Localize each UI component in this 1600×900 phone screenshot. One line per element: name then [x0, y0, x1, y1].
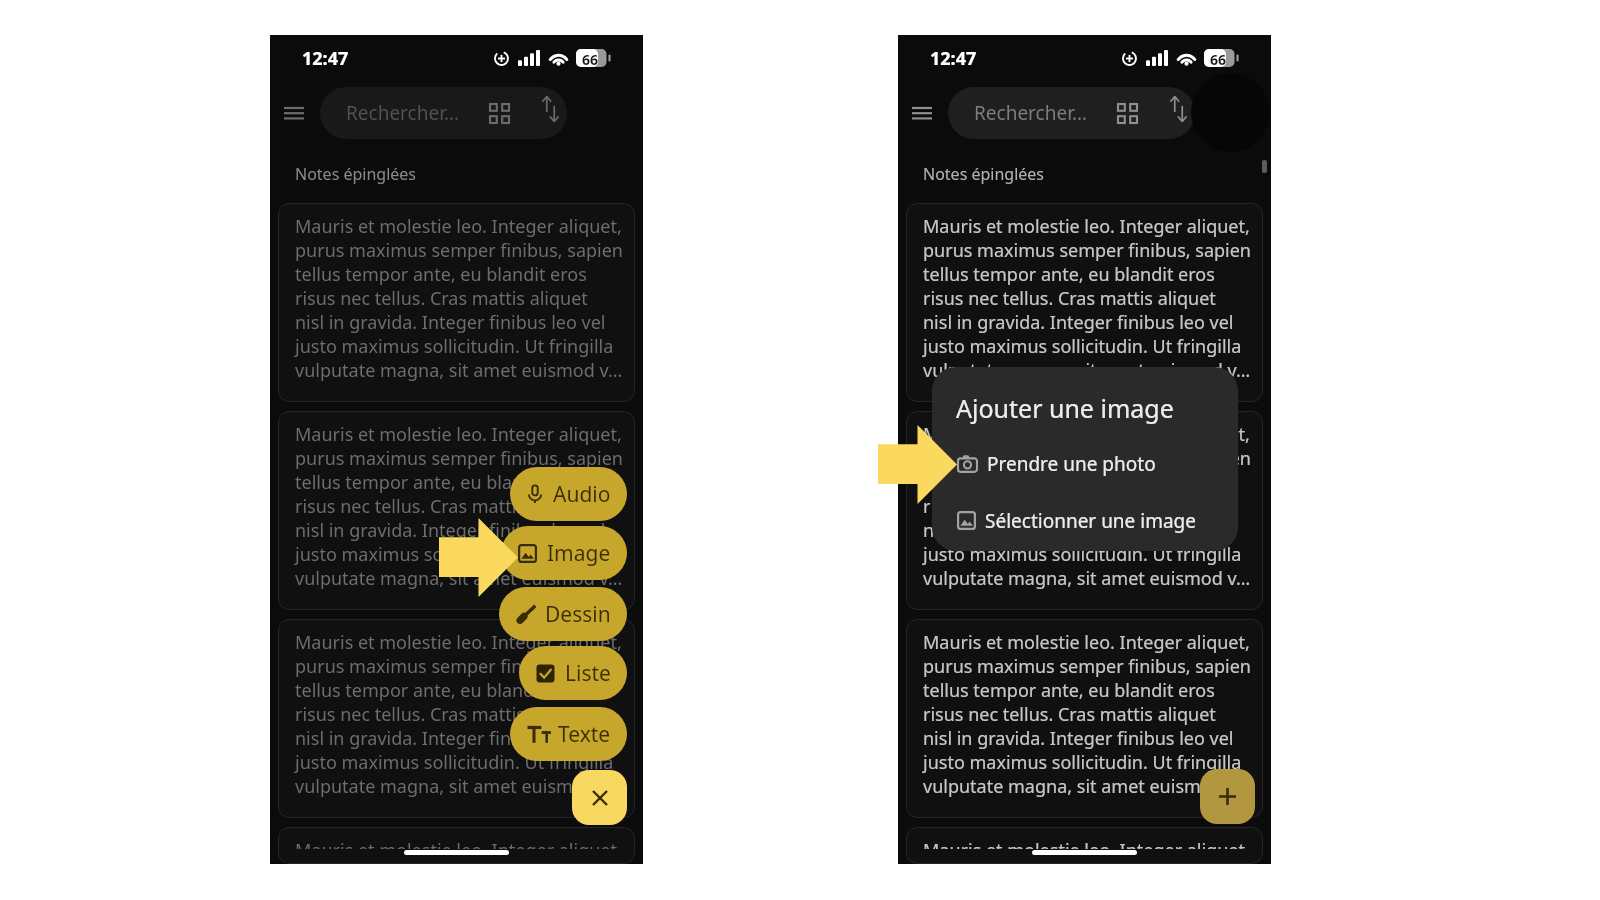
- button[interactable]: Liste: [519, 646, 627, 700]
- button[interactable]: Mauris et molestie leo. Integer aliquet,…: [906, 619, 1263, 818]
- button[interactable]: Prendre une photo: [932, 438, 1238, 489]
- staticText: 66: [1210, 50, 1227, 69]
- button[interactable]: Image: [501, 526, 627, 580]
- staticText: Mauris et molestie leo. Integer aliquet,…: [295, 838, 623, 849]
- button[interactable]: Mauris et molestie leo. Integer aliquet,…: [278, 203, 635, 402]
- button[interactable]: Fermer le menu: [572, 770, 627, 825]
- button[interactable]: Rechercher…: [320, 87, 567, 139]
- staticText: Notes épinglées: [295, 163, 417, 185]
- button[interactable]: Menu: [273, 92, 315, 134]
- staticText: Texte: [558, 720, 611, 749]
- staticText: Image: [547, 539, 611, 568]
- staticText: Notes épinglées: [923, 163, 1045, 185]
- button[interactable]: Trier: [533, 92, 567, 126]
- button[interactable]: Texte: [510, 707, 627, 761]
- staticText: Mauris et molestie leo. Integer aliquet,…: [923, 838, 1251, 849]
- staticText: Mauris et molestie leo. Integer aliquet,…: [295, 214, 623, 382]
- staticText: 12:47: [302, 46, 349, 71]
- button[interactable]: Mauris et molestie leo. Integer aliquet,…: [906, 203, 1263, 402]
- button[interactable]: Mauris et molestie leo. Integer aliquet,…: [906, 411, 1263, 610]
- button[interactable]: Trier: [1161, 92, 1195, 126]
- staticText: Mauris et molestie leo. Integer aliquet,…: [923, 214, 1251, 382]
- staticText: Mauris et molestie leo. Integer aliquet,…: [923, 630, 1251, 798]
- button[interactable]: Ajouter une note: [1200, 769, 1255, 824]
- staticText: Sélectionner une image: [985, 508, 1196, 534]
- staticText: Rechercher…: [346, 100, 459, 126]
- staticText: 66: [582, 50, 599, 69]
- button[interactable]: Changer la vue: [1110, 96, 1144, 130]
- staticText: Mauris et molestie leo. Integer aliquet,…: [295, 630, 623, 798]
- staticText: Audio: [553, 480, 611, 509]
- staticText: Dessin: [545, 600, 611, 629]
- button[interactable]: Mauris et molestie leo. Integer aliquet,…: [278, 619, 635, 818]
- button[interactable]: Audio: [510, 467, 627, 521]
- staticText: Rechercher…: [974, 100, 1087, 126]
- button[interactable]: Sélectionner une image: [932, 495, 1238, 546]
- button[interactable]: Changer la vue: [482, 96, 516, 130]
- button[interactable]: Mauris et molestie leo. Integer aliquet,…: [278, 827, 635, 864]
- button[interactable]: Mauris et molestie leo. Integer aliquet,…: [906, 827, 1263, 864]
- staticText: 12:47: [930, 46, 977, 71]
- staticText: Liste: [565, 659, 611, 688]
- button[interactable]: Rechercher…: [948, 87, 1195, 139]
- button[interactable]: Dessin: [499, 587, 627, 641]
- staticText: Mauris et molestie leo. Integer aliquet,…: [295, 422, 623, 590]
- staticText: Mauris et molestie leo. Integer aliquet,…: [923, 422, 1251, 590]
- button[interactable]: Mauris et molestie leo. Integer aliquet,…: [278, 411, 635, 610]
- button[interactable]: Menu: [901, 92, 943, 134]
- staticText: Ajouter une image: [956, 391, 1174, 425]
- staticText: Prendre une photo: [987, 451, 1156, 477]
